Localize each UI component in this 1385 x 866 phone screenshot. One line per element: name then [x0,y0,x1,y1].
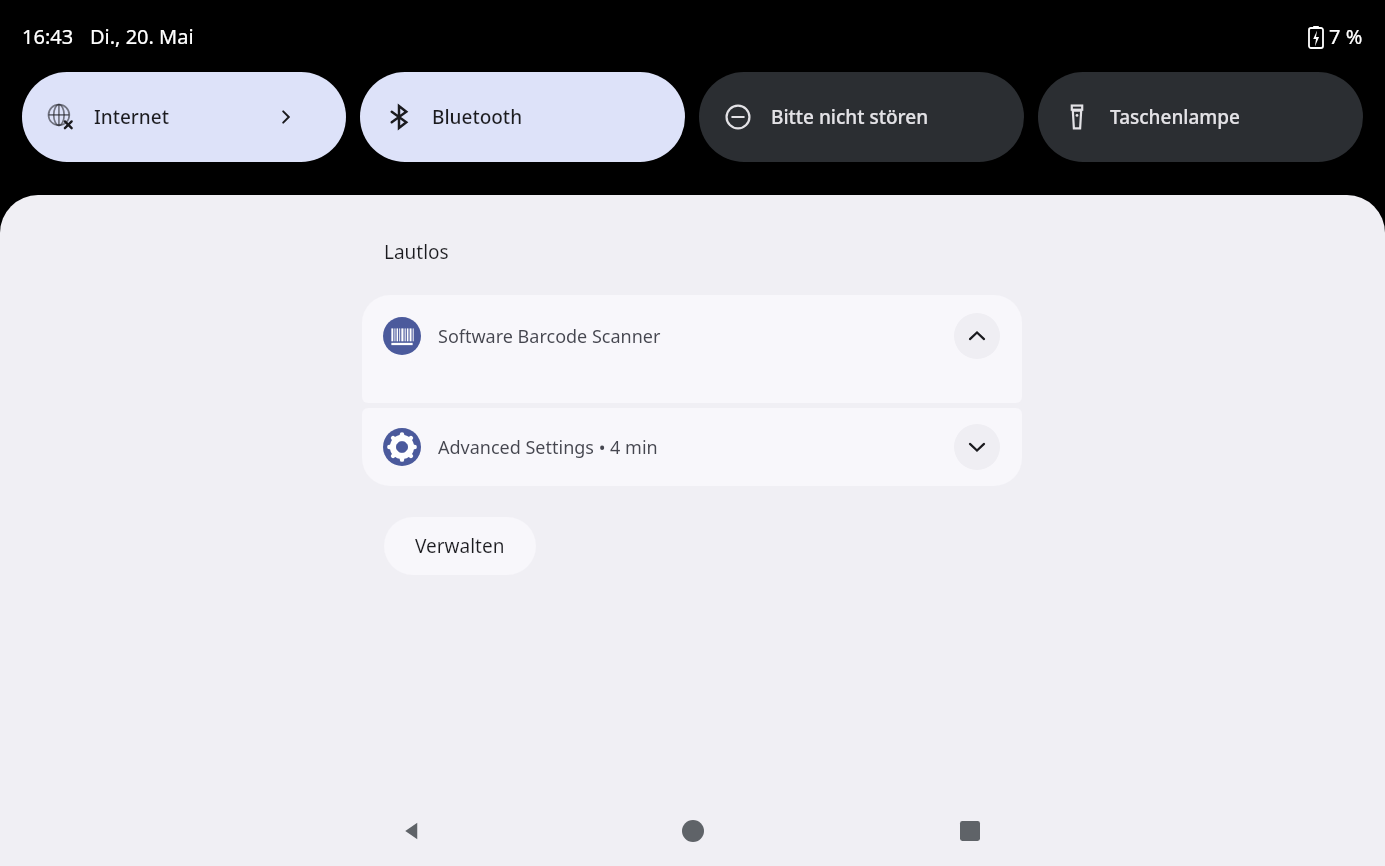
staticText: Di., 20. Mai [90,23,194,50]
staticText: 7 % [1329,23,1363,50]
button[interactable]: Recent apps [938,799,1002,863]
staticText: Advanced Settings • 4 min [438,435,954,460]
staticText: Software Barcode Scanner [438,324,954,349]
button[interactable]: Collapse [954,313,1000,359]
staticText: 16:43 [22,23,74,50]
staticText: Taschenlampe [1110,104,1240,130]
button[interactable]: Software Barcode Scanner [362,295,1022,403]
staticText: Bitte nicht stören [771,104,929,130]
staticText: Lautlos [384,239,449,265]
button[interactable]: Taschenlampe [1038,72,1363,162]
staticText: Internet [94,104,169,130]
staticText: Bluetooth [432,104,523,130]
button[interactable]: Bluetooth [360,72,685,162]
button[interactable]: Back [380,799,444,863]
button[interactable]: Advanced Settings • 4 min [362,408,1022,486]
button[interactable]: Home [661,799,725,863]
button[interactable]: Expand [954,424,1000,470]
button[interactable]: Verwalten [384,517,536,575]
button[interactable]: Internet [22,72,346,162]
staticText: Verwalten [415,533,505,559]
button[interactable]: Bitte nicht stören [699,72,1024,162]
